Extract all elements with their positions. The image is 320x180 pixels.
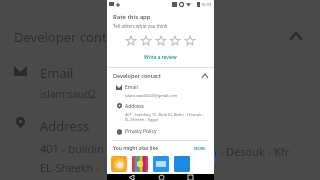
staticText: islam.saad2020@gmail.com [125,93,178,98]
button[interactable]: Privacy Policy [113,128,208,135]
button[interactable]: App suggestion [153,156,169,172]
button[interactable]: Rate 3 stars [155,35,167,47]
staticText: MORE [194,146,206,151]
staticText: 401 - buildin [40,141,104,156]
button[interactable]: Address [113,103,208,122]
staticText: 16:03 [201,2,212,7]
staticText: Developer cont [14,28,107,46]
staticText: You might also like [113,145,159,152]
staticText: Email [125,84,138,91]
staticText: Tell others what you think [113,23,168,29]
staticText: Address [40,117,90,135]
button[interactable]: Developer contact [113,72,208,79]
staticText: Write a review [144,54,177,61]
staticText: EL-Sheekh - [40,160,100,175]
staticText: Address [125,103,144,110]
staticText: 401 - building 15- Bark EL-Bahri - Desou… [125,112,208,117]
button[interactable]: Rate 1 stars [125,35,137,47]
staticText: Privacy Policy [125,128,157,135]
staticText: n - Desouk - Kfr [210,144,290,159]
button[interactable]: Home [156,174,166,180]
staticText: Developer contact [113,72,161,79]
button[interactable]: Rate 2 stars [140,35,152,47]
staticText: EL-Sheekh - Egypt [125,117,159,122]
button[interactable]: Recents [185,174,195,180]
button[interactable]: Write a review [138,52,183,63]
button[interactable]: Back [126,174,136,180]
button[interactable]: App suggestion [111,156,127,172]
button[interactable]: Email [113,84,208,98]
button[interactable]: App suggestion [174,156,190,172]
staticText: Email [40,64,74,82]
button[interactable]: Rate 4 stars [169,35,181,47]
staticText: islam:saud2 [40,87,97,101]
button[interactable]: MORE [192,144,208,153]
button[interactable]: App suggestion [132,156,148,172]
staticText: Rate this app [113,13,151,21]
button[interactable]: Rate 5 stars [184,35,196,47]
